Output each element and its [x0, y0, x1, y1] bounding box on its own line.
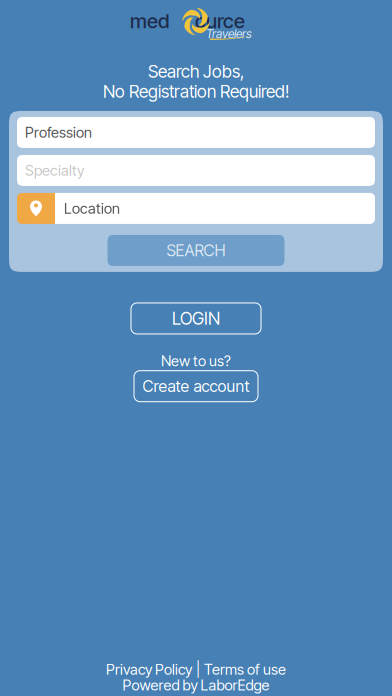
button[interactable]: Create account [134, 371, 258, 402]
button[interactable]: Privacy Policy [106, 660, 192, 678]
staticText: LOGIN [172, 308, 220, 329]
staticText: | [196, 660, 200, 678]
staticText: Search Jobs, [148, 61, 244, 82]
button[interactable]: Specialty [17, 155, 375, 186]
staticText: Terms of use [204, 660, 286, 678]
staticText: SEARCH [166, 241, 225, 260]
staticText: New to us? [161, 352, 231, 370]
button[interactable]: Location [17, 193, 375, 224]
staticText: Powered by LaborEdge [122, 676, 269, 694]
button[interactable]: LOGIN [131, 303, 261, 334]
staticText: No Registration Required! [103, 81, 289, 102]
staticText: Specialty [25, 162, 84, 179]
staticText: Travelers [206, 27, 252, 41]
staticText: Create account [142, 376, 249, 396]
staticText: Profession [25, 124, 92, 141]
button[interactable]: Terms of use [204, 660, 286, 678]
button[interactable]: SEARCH [107, 235, 284, 266]
button[interactable]: Profession [17, 117, 375, 148]
staticText: ource [195, 9, 245, 33]
staticText: Privacy Policy [106, 660, 192, 678]
staticText: Location [64, 200, 120, 217]
staticText: med [130, 9, 169, 33]
